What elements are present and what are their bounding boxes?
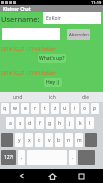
staticText: Hey :) <box>46 79 60 86</box>
staticText: 11:19 <box>91 0 102 5</box>
staticText: t <box>44 105 46 112</box>
staticText: d <box>28 120 32 127</box>
button[interactable]: und <box>0 92 35 102</box>
button[interactable]: u <box>61 103 69 114</box>
staticText: s <box>19 120 22 127</box>
button[interactable]: die <box>69 92 103 102</box>
button[interactable]: Recents <box>74 169 88 183</box>
button[interactable] <box>85 133 97 147</box>
staticText: k <box>79 120 82 127</box>
staticText: , <box>21 154 23 161</box>
staticText: i <box>74 105 76 112</box>
button[interactable]: c <box>35 133 43 147</box>
button[interactable]: . <box>69 150 76 165</box>
button[interactable]: Absenden <box>67 29 90 40</box>
staticText: q <box>3 105 7 112</box>
staticText: a <box>9 120 12 127</box>
staticText: w <box>13 105 17 112</box>
button[interactable]: s <box>16 117 24 129</box>
button[interactable]: j <box>66 117 74 129</box>
button[interactable]: f <box>36 117 44 129</box>
staticText: z <box>54 105 57 112</box>
button[interactable]: d <box>26 117 34 129</box>
button[interactable]: m <box>75 133 83 147</box>
button[interactable]: 12?! <box>1 150 16 165</box>
button[interactable]: ich <box>35 92 69 102</box>
staticText: r <box>34 105 37 112</box>
staticText: y <box>18 137 21 144</box>
button[interactable]: y <box>15 133 23 147</box>
staticText: o <box>83 105 87 112</box>
staticText: l <box>89 120 91 127</box>
staticText: die <box>82 94 90 101</box>
staticText: g <box>48 120 52 127</box>
button[interactable] <box>78 150 95 165</box>
staticText: ExKoir <box>46 15 61 22</box>
staticText: v <box>48 137 51 144</box>
staticText: m <box>77 137 82 144</box>
staticText: 2014.10.27 - 17:51 ExKoir: <box>1 70 57 76</box>
button[interactable]: Back <box>15 169 29 183</box>
staticText: n <box>67 137 71 144</box>
staticText: Username: <box>1 14 40 24</box>
staticText: und <box>13 94 23 101</box>
staticText: Absenden <box>69 32 89 38</box>
button[interactable]: w <box>11 103 19 114</box>
button[interactable]: o <box>81 103 89 114</box>
button[interactable]: ExKoir <box>43 12 101 24</box>
button[interactable]: t <box>41 103 49 114</box>
staticText: Kleiner Chat <box>3 6 31 12</box>
button[interactable]: q <box>1 103 9 114</box>
staticText: u <box>63 105 67 112</box>
staticText: p <box>93 105 97 112</box>
staticText: j <box>69 120 71 127</box>
staticText: 2014.10.27 - 17:49 ExKoir: <box>1 46 57 52</box>
button[interactable]: h <box>56 117 64 129</box>
button[interactable]: Kleiner Chat <box>0 5 103 12</box>
button[interactable]: n <box>65 133 73 147</box>
button[interactable]: k <box>76 117 84 129</box>
button[interactable]: g <box>46 117 54 129</box>
staticText: h <box>58 120 62 127</box>
button[interactable]: l <box>86 117 94 129</box>
staticText: . <box>72 154 74 161</box>
staticText: ich <box>49 94 56 101</box>
staticText: 12?! <box>4 154 14 161</box>
button[interactable]: b <box>55 133 63 147</box>
button[interactable] <box>1 133 13 147</box>
button[interactable]: p <box>91 103 99 114</box>
button[interactable]: Home <box>45 169 59 183</box>
button[interactable]: r <box>31 103 39 114</box>
button[interactable]: x <box>25 133 33 147</box>
staticText: c <box>38 137 41 144</box>
button[interactable]: a <box>6 117 14 129</box>
staticText: e <box>24 105 27 112</box>
button[interactable]: , <box>18 150 25 165</box>
staticText: b <box>57 137 61 144</box>
button[interactable]: i <box>71 103 79 114</box>
staticText: What's up? <box>39 55 65 62</box>
button[interactable]: e <box>21 103 29 114</box>
staticText: f <box>39 120 41 127</box>
button[interactable]: v <box>45 133 53 147</box>
button[interactable]: z <box>51 103 59 114</box>
staticText: x <box>28 137 31 144</box>
